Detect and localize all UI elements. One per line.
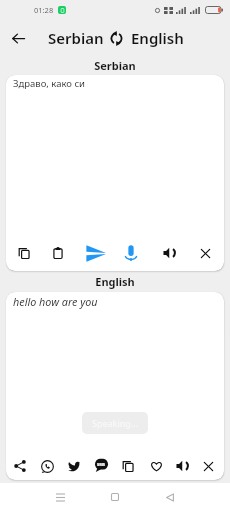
staticText: Здраво, како си — [13, 77, 86, 90]
button[interactable]: Swap languages — [104, 26, 128, 50]
staticText: hello how are you — [13, 294, 98, 309]
staticText: Speaking... — [92, 417, 139, 429]
button[interactable]: Back — [157, 484, 183, 510]
staticText: SMS — [97, 462, 106, 467]
button[interactable]: Speak — [170, 454, 194, 478]
button[interactable]: Serbian — [48, 28, 104, 48]
button[interactable]: Copy — [12, 241, 36, 265]
button[interactable]: Recent apps — [47, 484, 73, 510]
button[interactable]: Paste — [46, 241, 70, 265]
button[interactable]: Share on WhatsApp — [35, 454, 59, 478]
button[interactable]: Share on Twitter — [62, 454, 86, 478]
button[interactable]: Share — [8, 454, 32, 478]
button[interactable]: Translate — [84, 241, 108, 265]
staticText: English — [95, 274, 135, 289]
button[interactable]: Speak — [157, 241, 181, 265]
button[interactable]: Copy — [116, 454, 140, 478]
button[interactable]: Voice input — [119, 241, 143, 265]
button[interactable]: English — [131, 28, 184, 48]
staticText: 01:28 — [34, 5, 54, 15]
staticText: Serbian — [94, 58, 136, 73]
button[interactable]: Favorite — [144, 454, 168, 478]
button[interactable]: Clear text — [193, 241, 217, 265]
button[interactable]: Home — [102, 484, 128, 510]
button[interactable]: Send SMS — [89, 453, 113, 477]
button[interactable]: Back — [6, 26, 30, 50]
button[interactable]: Close — [196, 454, 220, 478]
